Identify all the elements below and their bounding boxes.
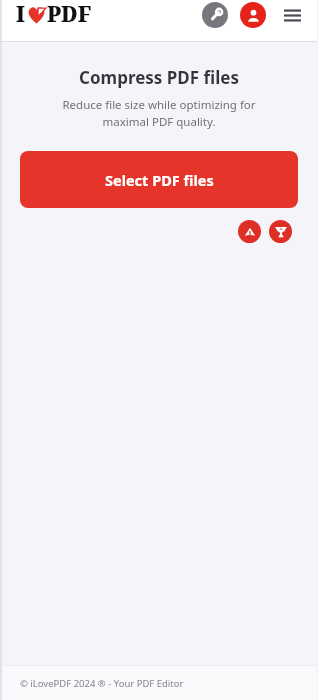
staticText: © iLovePDF 2024 ® - Your PDF Editor <box>20 677 184 690</box>
staticText: Select PDF files <box>105 170 214 190</box>
button[interactable]: Menu <box>280 3 304 27</box>
staticText: I <box>16 0 25 29</box>
button[interactable]: Select PDF files <box>20 151 298 208</box>
button[interactable]: Dropbox <box>269 220 292 243</box>
button[interactable]: Google Drive <box>238 220 261 243</box>
button[interactable]: Tools <box>202 2 228 28</box>
button[interactable]: Account <box>240 2 266 28</box>
button[interactable]: I <box>16 0 92 29</box>
staticText: Reduce file size while optimizing for ma… <box>28 97 290 129</box>
staticText: PDF <box>47 0 92 29</box>
staticText: Compress PDF files <box>0 66 318 89</box>
